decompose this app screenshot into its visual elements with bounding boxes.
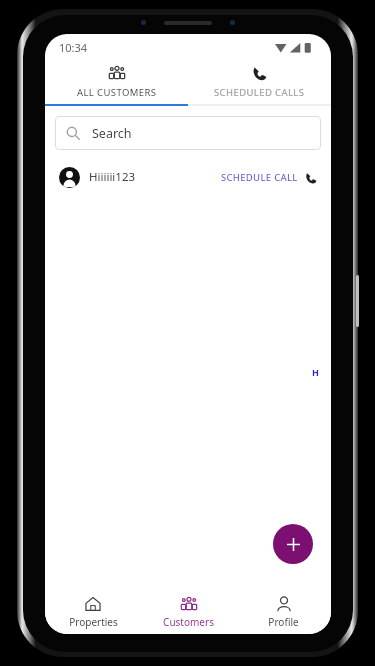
staticText: ALL CUSTOMERS <box>77 86 157 99</box>
staticText: Customers <box>163 615 214 629</box>
button[interactable]: Search <box>55 116 321 150</box>
button[interactable]: ALL CUSTOMERS <box>45 60 188 104</box>
staticText: 10:34 <box>59 40 88 55</box>
staticText: H <box>312 366 319 378</box>
button[interactable]: Profile <box>236 590 331 634</box>
staticText: Hiiiiii123 <box>89 169 136 185</box>
button[interactable]: Add customer <box>273 524 313 564</box>
button[interactable]: Customers <box>141 590 236 634</box>
staticText: Search <box>92 125 132 142</box>
button[interactable]: SCHEDULED CALLS <box>188 60 331 104</box>
staticText: Profile <box>268 615 299 629</box>
staticText: Properties <box>69 615 118 629</box>
staticText: SCHEDULE CALL <box>221 171 298 184</box>
button[interactable]: SCHEDULE CALL <box>221 171 317 184</box>
button[interactable]: Properties <box>45 590 141 634</box>
staticText: SCHEDULED CALLS <box>214 86 305 99</box>
button[interactable]: Hiiiiii123 <box>45 160 331 194</box>
